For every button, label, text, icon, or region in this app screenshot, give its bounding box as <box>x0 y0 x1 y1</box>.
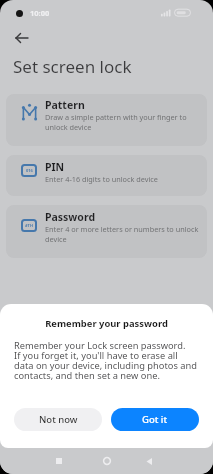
staticText: Pattern <box>45 98 85 112</box>
staticText: Remember your password <box>0 317 213 330</box>
staticText: Draw a simple pattern with your finger t… <box>45 112 187 132</box>
button[interactable] <box>12 30 32 46</box>
staticText: Enter 4 or more letters or numbers to un… <box>45 224 199 244</box>
button[interactable]: 016 <box>6 155 207 196</box>
button[interactable] <box>137 448 161 474</box>
button[interactable] <box>47 448 71 474</box>
staticText: Got it <box>142 413 168 426</box>
staticText: PIN <box>45 160 65 174</box>
button[interactable]: Pattern <box>6 94 207 146</box>
button[interactable] <box>95 448 119 474</box>
staticText: Password <box>45 210 96 224</box>
staticText: #TH <box>25 223 33 228</box>
staticText: 016 <box>26 168 33 173</box>
staticText: 10:00 <box>30 8 50 18</box>
staticText: Not now <box>39 413 78 426</box>
staticText: Enter 4-16 digits to unlock device <box>45 174 158 184</box>
button[interactable]: Got it <box>111 408 199 431</box>
staticText: Remember your Lock screen password. If y… <box>14 339 197 381</box>
button[interactable]: Not now <box>14 408 102 431</box>
button[interactable]: #TH <box>6 205 207 258</box>
staticText: Set screen lock <box>13 55 132 78</box>
